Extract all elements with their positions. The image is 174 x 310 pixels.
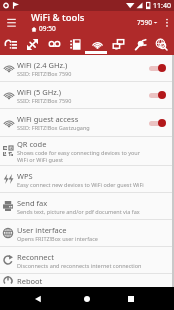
staticText: QR code xyxy=(17,139,47,149)
button[interactable]: Voicemail xyxy=(44,33,65,55)
staticText: SSID: FRITZ!Box 7590 xyxy=(17,70,72,77)
staticText: Send fax xyxy=(17,198,48,208)
staticText: Reboot xyxy=(17,276,43,286)
staticText: Disconnects and reconnects internet conn… xyxy=(17,262,142,269)
button[interactable]: More options xyxy=(160,11,174,33)
staticText: 7590 xyxy=(137,18,152,27)
button[interactable]: Back xyxy=(28,289,48,309)
staticText: SSID: FRITZ!Box 7590 xyxy=(17,97,72,104)
staticText: WiFi guest access xyxy=(17,114,79,124)
staticText: WPS xyxy=(17,171,33,181)
staticText: Sends text, picture and/or pdf document … xyxy=(17,208,140,215)
button[interactable]: Phone book xyxy=(65,33,86,55)
staticText: WiFi (5 GHz.) xyxy=(17,87,61,97)
staticText: Opens FRITZ!Box user interface xyxy=(17,235,98,242)
staticText: WiFi & tools xyxy=(31,11,85,24)
button[interactable]: Toggle WiFi (2.4 GHz.) xyxy=(149,61,166,75)
button[interactable]: Search xyxy=(151,33,172,55)
button[interactable]: Home network xyxy=(108,33,129,55)
button[interactable]: WiFi guest access xyxy=(0,109,174,136)
button[interactable]: WPS xyxy=(0,166,174,192)
button[interactable]: WiFi (2.4 GHz.) xyxy=(0,55,174,81)
button[interactable]: WiFi (5 GHz.) xyxy=(0,82,174,108)
button[interactable]: Send fax xyxy=(0,193,174,219)
button[interactable]: Open navigation drawer xyxy=(0,11,22,33)
button[interactable]: QR code xyxy=(0,137,174,165)
button[interactable]: Recents xyxy=(121,289,141,309)
button[interactable]: Toggle WiFi guest access xyxy=(149,116,166,130)
staticText: WiFi (2.4 GHz.) xyxy=(17,60,68,70)
staticText: Shows code for easy connecting devices t… xyxy=(17,149,140,163)
staticText: SSID: FRITZ!Box Gastzugang xyxy=(17,124,90,131)
button[interactable]: Home xyxy=(77,289,97,309)
button[interactable]: Toggle WiFi (5 GHz.) xyxy=(149,88,166,102)
button[interactable]: User interface xyxy=(0,220,174,246)
button[interactable]: Call list xyxy=(1,33,22,55)
button[interactable]: Call divert xyxy=(22,33,43,55)
button[interactable]: 7590 xyxy=(135,18,160,27)
button[interactable]: WiFi and tools xyxy=(87,33,108,55)
button[interactable]: Reboot xyxy=(0,274,174,287)
staticText: User interface xyxy=(17,225,67,235)
staticText: 09:50 xyxy=(39,24,56,33)
staticText: Reconnect xyxy=(17,252,54,262)
staticText: 11:40 xyxy=(153,1,171,11)
button[interactable]: Smart home xyxy=(130,33,151,55)
staticText: Easy connect new devices to WiFi oder gu… xyxy=(17,181,144,188)
button[interactable]: Reconnect xyxy=(0,247,174,273)
